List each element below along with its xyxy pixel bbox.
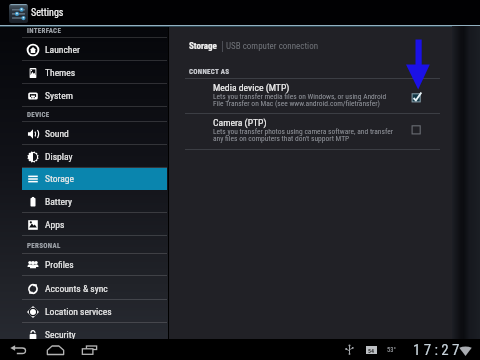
button[interactable]: Security [22, 323, 167, 346]
staticText: Lets you transfer media files on Windows… [213, 92, 387, 101]
button[interactable]: Battery [22, 190, 167, 213]
staticText: Media device (MTP) [213, 82, 290, 93]
staticText: 54 [368, 347, 375, 354]
staticText: File Transfer on Mac (see www.android.co… [213, 99, 380, 108]
staticText: Profiles [45, 259, 74, 270]
staticText: any files on computers that don't suppor… [213, 134, 350, 143]
staticText: Themes [45, 67, 76, 78]
staticText: 53° [387, 346, 396, 354]
staticText: Battery [45, 196, 73, 207]
staticText: Accounts & sync [45, 283, 108, 294]
button[interactable]: System [22, 84, 167, 107]
button[interactable]: Sound [22, 122, 167, 145]
staticText: Storage [189, 41, 217, 52]
staticText: Sound [45, 128, 69, 139]
button[interactable]: Location services [22, 300, 167, 323]
staticText: Security [45, 329, 76, 340]
staticText: Settings [31, 7, 64, 19]
staticText: PERSONAL [27, 242, 61, 250]
staticText: Display [45, 151, 73, 162]
staticText: Camera (PTP) [213, 117, 267, 128]
button[interactable]: Storage [22, 168, 167, 190]
button[interactable]: Back [10, 339, 30, 360]
button[interactable]: Home [47, 339, 67, 360]
staticText: CONNECT AS [189, 68, 230, 76]
button[interactable]: Apps [22, 213, 167, 236]
button[interactable]: Profiles [22, 253, 167, 276]
staticText: Apps [45, 219, 65, 230]
button[interactable]: Media device (MTP) [185, 78, 440, 113]
staticText: 17:27 [413, 341, 463, 359]
button[interactable]: Launcher [22, 38, 167, 61]
button[interactable]: Recent apps [81, 339, 101, 360]
staticText: Storage [45, 173, 75, 184]
staticText: USB computer connection [226, 41, 319, 52]
staticText: DEVICE [27, 111, 50, 119]
staticText: Lets you transfer photos using camera so… [213, 127, 393, 136]
button[interactable]: Display [22, 145, 167, 168]
button[interactable]: Themes [22, 61, 167, 84]
staticText: Launcher [45, 44, 80, 55]
button[interactable]: Accounts & sync [22, 277, 167, 300]
button[interactable]: Camera (PTP) [185, 113, 440, 149]
staticText: INTERFACE [27, 27, 62, 35]
staticText: System [45, 90, 73, 101]
staticText: Location services [45, 306, 112, 317]
